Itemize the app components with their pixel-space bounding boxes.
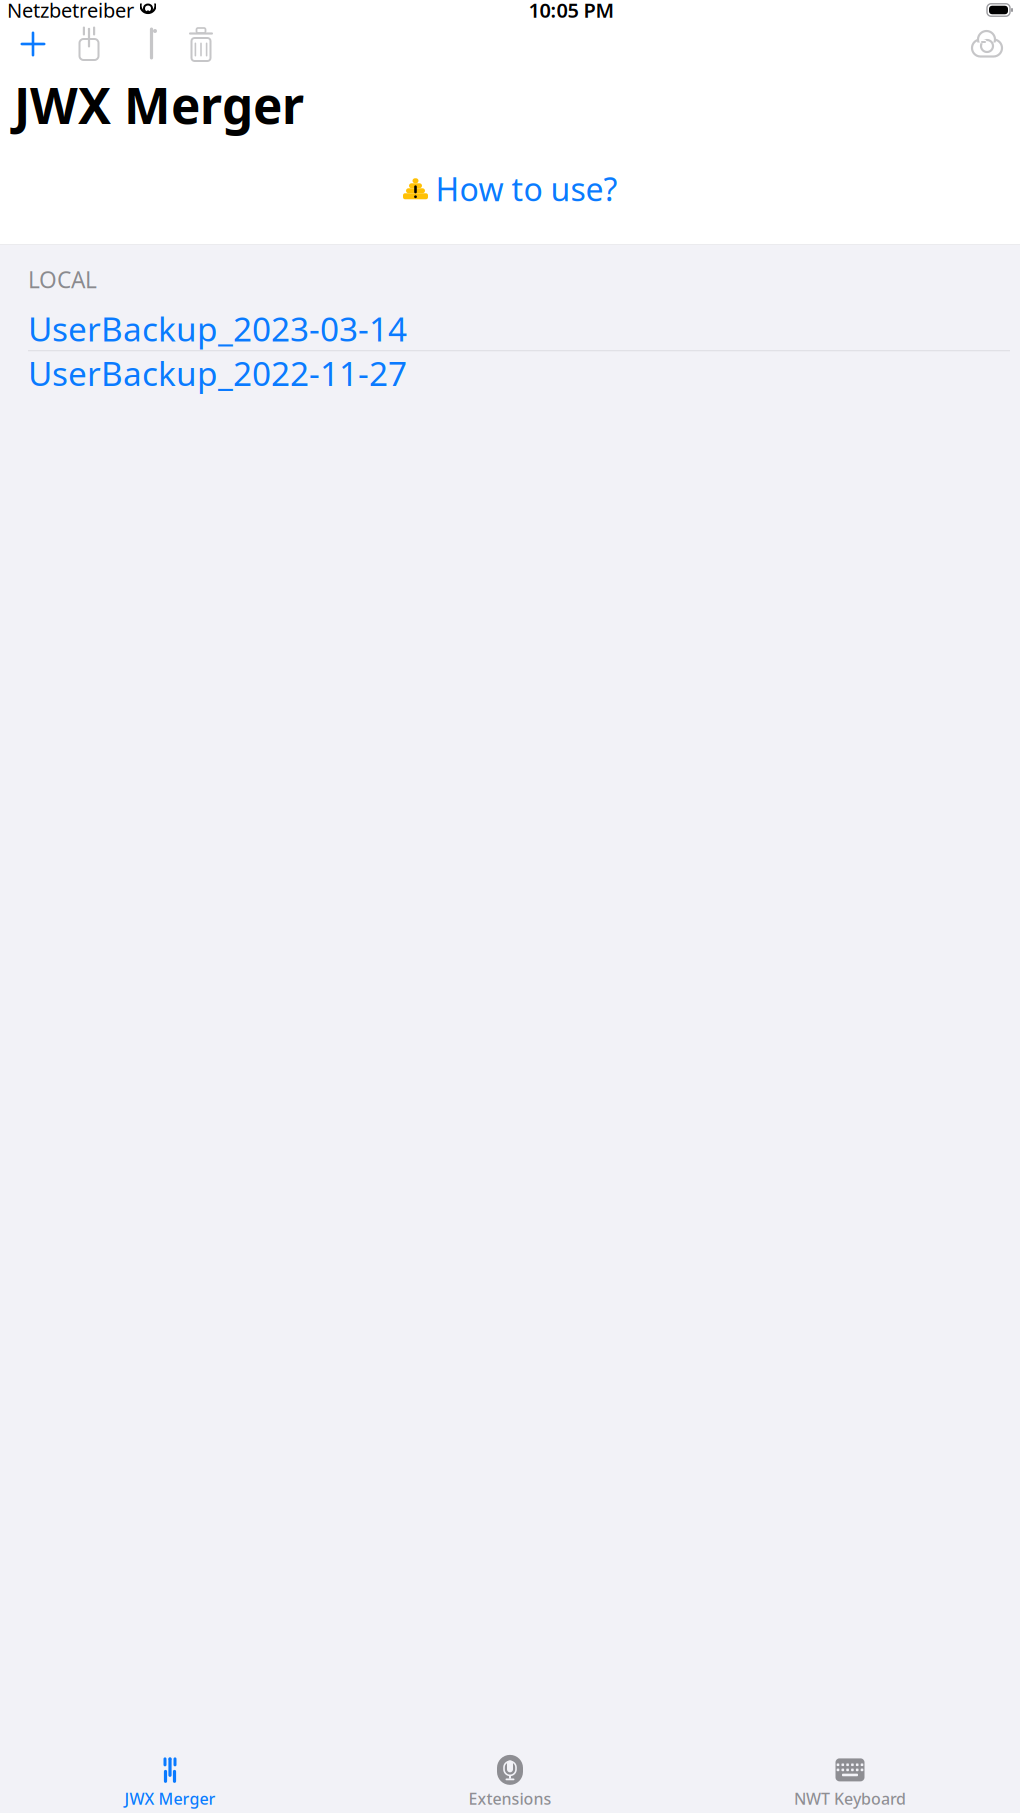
- button[interactable]: JWX Merger: [0, 1749, 340, 1813]
- button[interactable]: NWT Keyboard: [680, 1749, 1020, 1813]
- staticText: How to use?: [435, 167, 617, 210]
- button[interactable]: Restore from iCloud: [959, 22, 1015, 66]
- staticText: UserBackup_2023-03-14: [28, 306, 407, 351]
- staticText: Extensions: [468, 1788, 551, 1809]
- staticText: NWT Keyboard: [794, 1788, 906, 1809]
- staticText: UserBackup_2022-11-27: [28, 351, 407, 395]
- button[interactable]: Edit: [117, 22, 173, 66]
- button[interactable]: Add: [5, 22, 61, 66]
- staticText: Netzbetreiber: [7, 0, 134, 23]
- button[interactable]: UserBackup_2022-11-27: [0, 351, 1020, 395]
- staticText: 10:05 PM: [528, 0, 614, 23]
- staticText: JWX Merger: [14, 72, 304, 137]
- button[interactable]: Share: [61, 22, 117, 66]
- button[interactable]: Delete: [173, 22, 229, 66]
- staticText: LOCAL: [28, 264, 97, 295]
- button[interactable]: UserBackup_2023-03-14: [0, 307, 1020, 351]
- staticText: JWX Merger: [124, 1788, 215, 1809]
- button[interactable]: Extensions: [340, 1749, 680, 1813]
- button[interactable]: How to use?: [392, 161, 627, 216]
